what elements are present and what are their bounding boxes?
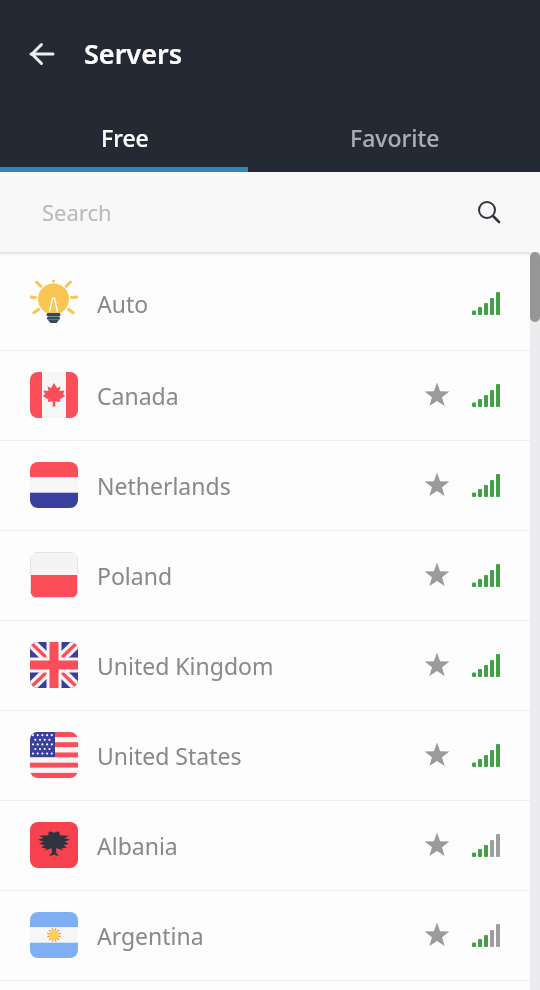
button[interactable]: Albania	[0, 800, 540, 890]
button[interactable]: Netherlands	[0, 440, 540, 530]
button[interactable]: Auto	[0, 256, 540, 350]
staticText: Favorite	[350, 122, 440, 153]
staticText: Free	[101, 122, 149, 153]
button[interactable]: Argentina	[0, 890, 540, 980]
staticText: Poland	[97, 560, 173, 591]
button[interactable]	[20, 32, 64, 76]
staticText: Argentina	[97, 920, 204, 951]
button[interactable]: Search	[0, 172, 540, 252]
staticText: Servers	[84, 35, 182, 72]
staticText: United States	[97, 740, 242, 771]
staticText: United Kingdom	[97, 650, 274, 681]
staticText: Canada	[97, 380, 179, 411]
button[interactable]: United States	[0, 710, 540, 800]
button[interactable]: Canada	[0, 350, 540, 440]
staticText: Auto	[97, 288, 149, 319]
button[interactable]: Free	[0, 97, 270, 172]
staticText: Search	[42, 197, 112, 227]
staticText: Albania	[97, 830, 178, 861]
button[interactable]: Favorite	[270, 97, 540, 172]
staticText: Netherlands	[97, 470, 231, 501]
button[interactable]: Poland	[0, 530, 540, 620]
button[interactable]: United Kingdom	[0, 620, 540, 710]
